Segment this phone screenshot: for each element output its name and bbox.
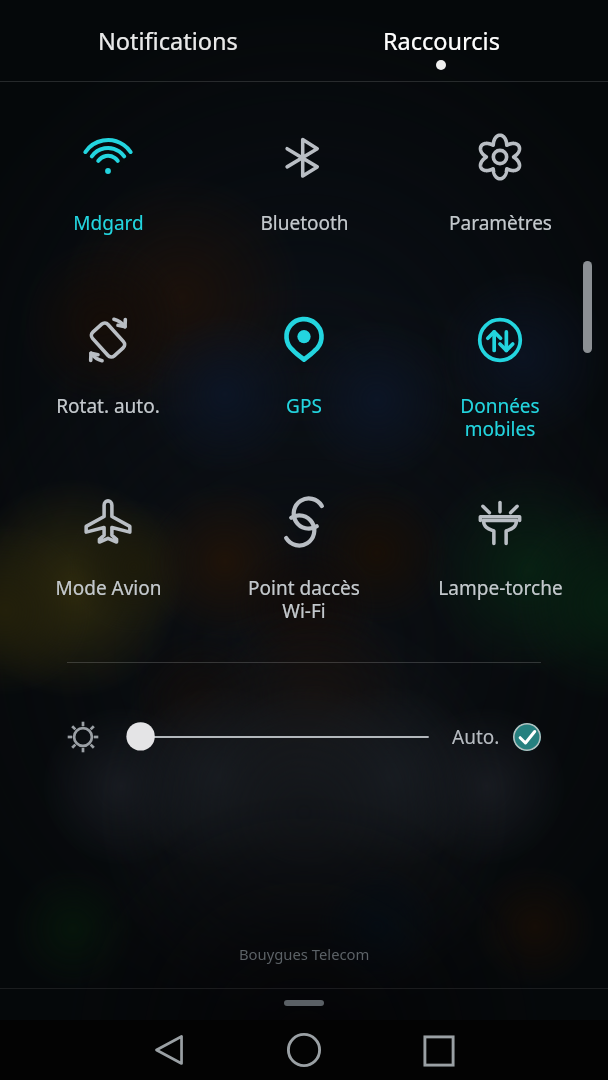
button[interactable]: Lampe-torche bbox=[402, 496, 598, 601]
button[interactable]: Mdgard bbox=[10, 131, 206, 236]
staticText: Mdgard bbox=[73, 210, 144, 236]
button[interactable]: Rotat. auto. bbox=[10, 314, 206, 419]
button[interactable]: GPS bbox=[206, 314, 402, 419]
staticText: Lampe-torche bbox=[438, 575, 563, 601]
button[interactable]: Notifications bbox=[38, 0, 298, 82]
button[interactable]: Raccourcis bbox=[311, 0, 571, 82]
staticText: Paramètres bbox=[449, 210, 552, 236]
button[interactable]: Paramètres bbox=[402, 131, 598, 236]
staticText: Mode Avion bbox=[55, 575, 162, 601]
staticText: Notifications bbox=[98, 25, 238, 57]
button[interactable]: Mode Avion bbox=[10, 496, 206, 601]
button[interactable]: Auto. bbox=[452, 712, 541, 762]
button[interactable]: Point daccès Wi-Fi bbox=[206, 496, 402, 624]
button[interactable]: Recents bbox=[394, 1020, 484, 1080]
button[interactable]: Home bbox=[259, 1020, 349, 1080]
staticText: Raccourcis bbox=[383, 25, 500, 57]
staticText: Bouygues Telecom bbox=[239, 944, 370, 964]
button[interactable]: Bluetooth bbox=[206, 131, 402, 236]
staticText: GPS bbox=[286, 393, 322, 419]
staticText: Données mobiles bbox=[460, 393, 540, 442]
button[interactable]: Données mobiles bbox=[402, 314, 598, 442]
staticText: Bluetooth bbox=[260, 210, 349, 236]
staticText: Auto. bbox=[452, 724, 500, 750]
button[interactable]: Brightness bbox=[66, 720, 100, 754]
staticText: Rotat. auto. bbox=[56, 393, 160, 419]
button[interactable]: Back bbox=[124, 1020, 214, 1080]
staticText: Point daccès Wi-Fi bbox=[248, 575, 360, 624]
